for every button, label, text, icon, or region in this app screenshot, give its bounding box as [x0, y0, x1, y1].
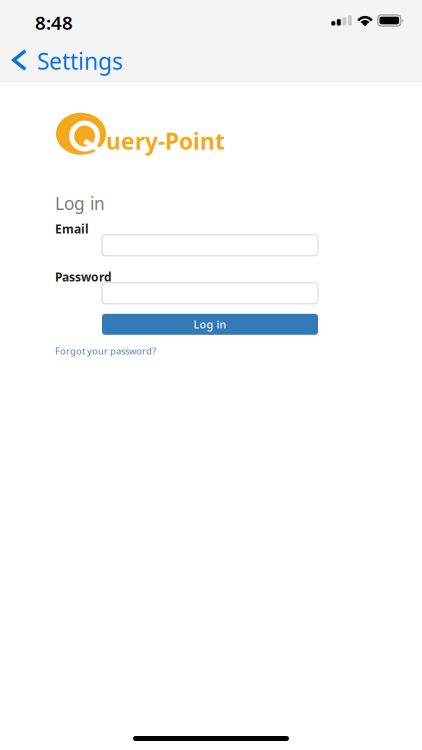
- staticText: Password: [55, 269, 112, 285]
- staticText: Log in: [193, 317, 226, 331]
- staticText: Forgot your password?: [55, 345, 156, 357]
- staticText: Email: [55, 221, 89, 237]
- staticText: Log in: [55, 192, 105, 215]
- button[interactable]: Log in: [102, 314, 318, 335]
- button[interactable]: Settings: [0, 41, 124, 81]
- staticText: 8:48: [35, 10, 73, 35]
- staticText: Settings: [37, 46, 123, 76]
- staticText: uery-Point: [106, 126, 225, 156]
- button[interactable]: Forgot your password?: [55, 345, 156, 357]
